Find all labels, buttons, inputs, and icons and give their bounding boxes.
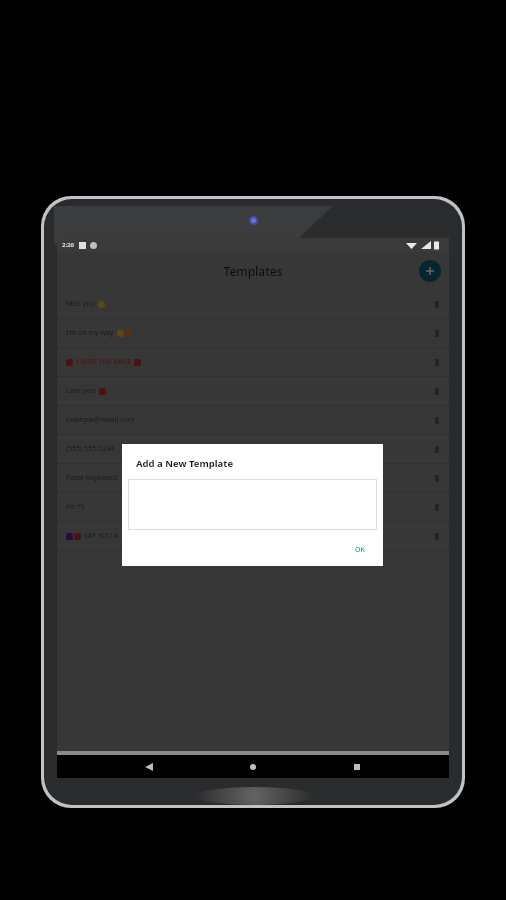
button[interactable]: OK <box>351 543 369 557</box>
staticText: Miss you <box>66 299 97 309</box>
staticText: lm :*) <box>66 502 85 512</box>
button[interactable]: Back <box>137 755 161 778</box>
button[interactable]: I MISS THE RAGE <box>57 348 449 377</box>
button[interactable]: Love you <box>57 377 449 406</box>
button[interactable]: Recents <box>345 755 369 778</box>
staticText: example@email.com <box>66 415 135 425</box>
staticText: SAY YOU A <box>84 531 119 541</box>
button[interactable]: I'm on my way <box>57 319 449 348</box>
staticText: Paste Keyboard <box>66 473 118 483</box>
button[interactable]: Paste Keyboard <box>57 464 449 493</box>
staticText: I'm on my way <box>66 328 116 338</box>
button[interactable]: Add template <box>419 260 441 282</box>
staticText: I MISS THE RAGE <box>76 357 132 367</box>
staticText: OK <box>355 545 365 555</box>
staticText: Templates <box>223 263 283 279</box>
staticText: (555) 555-1234 <box>66 444 115 454</box>
button[interactable]: Home <box>241 755 265 778</box>
button[interactable]: Template text field <box>128 479 377 530</box>
button[interactable]: lm :*) <box>57 493 449 522</box>
staticText: 2:26 <box>62 241 74 249</box>
staticText: Love you <box>66 386 98 396</box>
button[interactable]: (555) 555-1234 <box>57 435 449 464</box>
staticText: Add a New Template <box>136 457 234 470</box>
button[interactable]: SAY YOU A <box>57 522 449 551</box>
button[interactable]: Miss you <box>57 290 449 319</box>
